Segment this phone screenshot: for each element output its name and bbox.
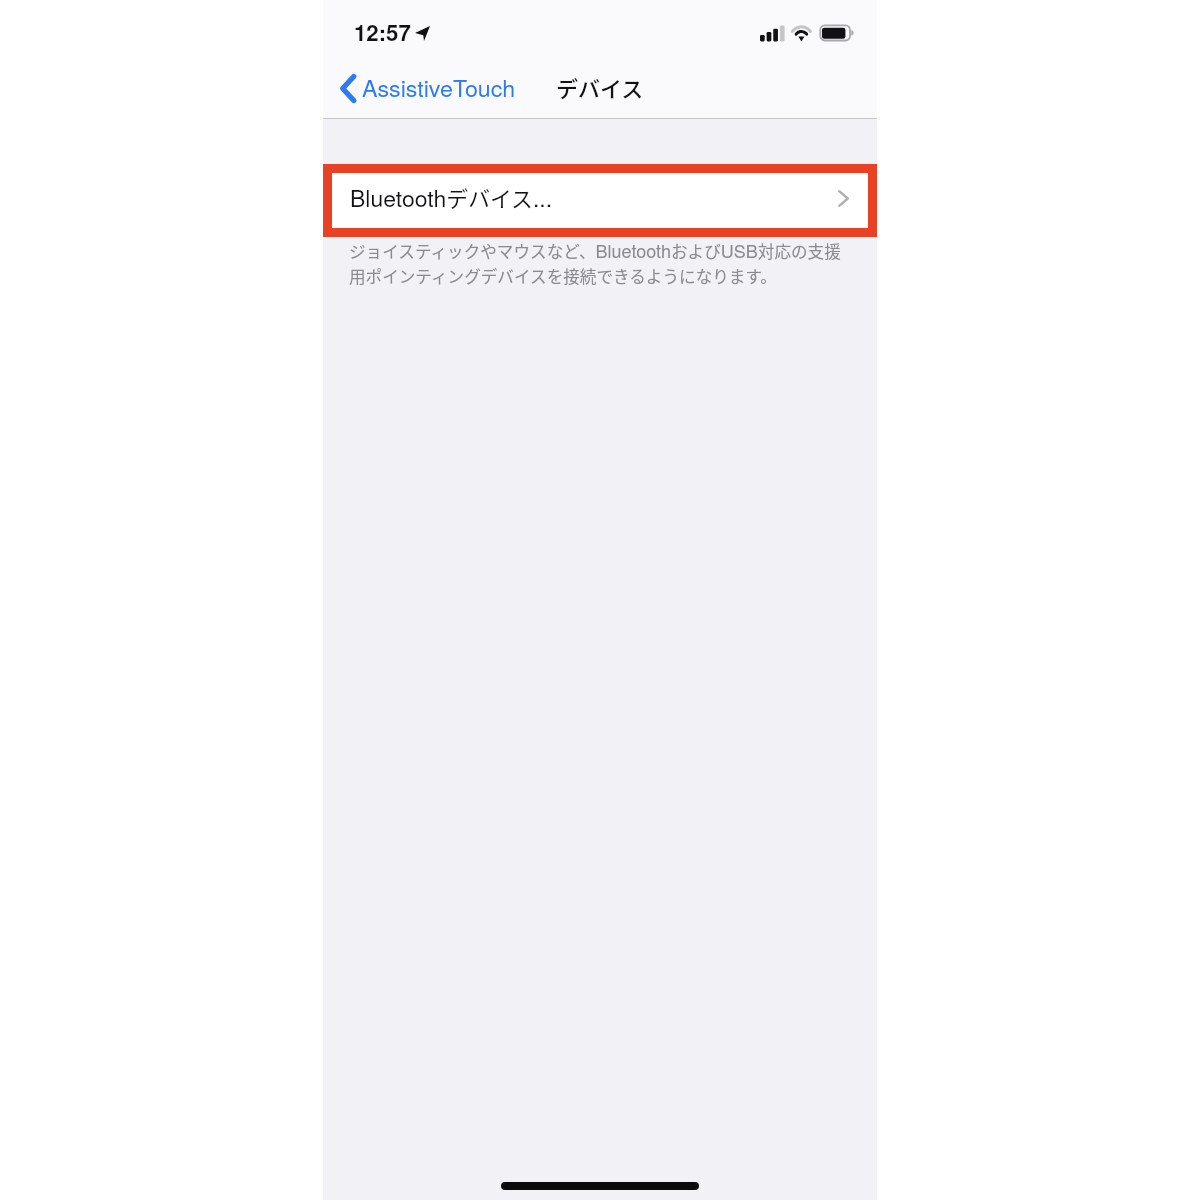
staticText: 12:57 <box>354 16 411 48</box>
staticText: Bluetoothデバイス... <box>350 181 553 214</box>
other: Open Bluetooth devices <box>838 190 849 207</box>
button[interactable]: Back to AssistiveTouch <box>337 70 522 111</box>
other: Status indicators <box>760 24 856 42</box>
staticText: ジョイスティックやマウスなど、BluetoothおよびUSB対応の支援用ポインテ… <box>349 237 843 288</box>
staticText: AssistiveTouch <box>362 70 516 103</box>
button[interactable]: Bluetoothデバイス... <box>323 173 877 229</box>
staticText: デバイス <box>556 71 644 103</box>
